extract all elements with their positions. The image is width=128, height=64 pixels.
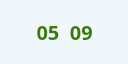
staticText: 05 09 (36, 19, 93, 46)
